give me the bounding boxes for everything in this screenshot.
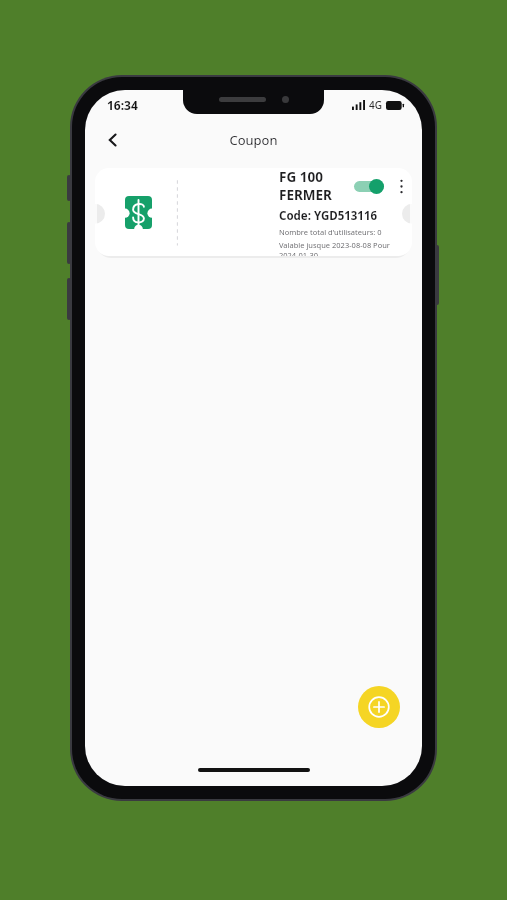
staticText: Code: YGD513116 (279, 208, 378, 224)
staticText: Coupon (229, 131, 278, 149)
staticText: 16:34 (107, 97, 138, 113)
button[interactable]: Toggle coupon (354, 179, 384, 194)
staticText: Nombre total d'utilisateurs: 0 (279, 227, 382, 237)
button[interactable]: Back (95, 122, 131, 158)
staticText: Valable jusque 2023-08-08 Pour 2024-01-3… (279, 240, 408, 256)
staticText: 4G (369, 98, 382, 112)
staticText: FG 100 FERMER (279, 168, 354, 204)
button[interactable]: Add coupon (358, 686, 400, 728)
button[interactable]: FG 100 FERMER (95, 168, 412, 256)
button[interactable]: More options (394, 174, 408, 198)
